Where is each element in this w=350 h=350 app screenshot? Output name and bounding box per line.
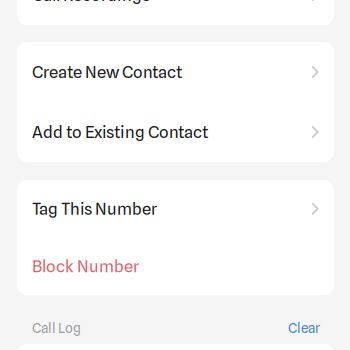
button[interactable]: Create New Contact	[17, 42, 334, 102]
staticText: Call Log	[32, 320, 81, 336]
staticText: Block Number	[32, 256, 139, 276]
staticText: Add to Existing Contact	[32, 122, 208, 142]
button[interactable]: Call Recordings	[17, 0, 334, 25]
button[interactable]: Add to Existing Contact	[17, 102, 334, 162]
staticText: Create New Contact	[32, 62, 182, 82]
button[interactable]: Clear	[288, 320, 320, 336]
button[interactable]: Tag This Number	[17, 180, 334, 237]
staticText: Call Recordings	[32, 0, 150, 5]
staticText: Tag This Number	[32, 199, 157, 219]
staticText: Clear	[288, 320, 320, 336]
button[interactable]: Block Number	[17, 237, 334, 295]
